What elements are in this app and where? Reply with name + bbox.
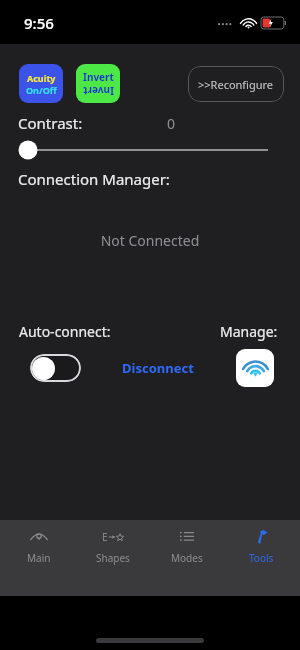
button[interactable]: Disconnect: [116, 355, 200, 381]
button[interactable]: Manage Wi-Fi: [236, 349, 274, 387]
button[interactable]: Acuity: [19, 64, 63, 103]
button[interactable]: Modes: [152, 520, 222, 565]
button[interactable]: [18, 139, 268, 161]
button[interactable]: >>Reconfigure: [188, 66, 284, 102]
staticText: Auto-connect:: [19, 322, 111, 341]
staticText: Not Connected: [0, 231, 300, 250]
staticText: Invert: [83, 84, 114, 98]
staticText: Manage:: [220, 322, 278, 341]
staticText: 0: [167, 114, 176, 133]
staticText: Modes: [171, 551, 203, 565]
staticText: Tools: [249, 551, 274, 565]
staticText: >>Reconfigure: [198, 77, 274, 92]
button[interactable]: Tools: [226, 520, 296, 565]
button[interactable]: Auto-connect toggle: [30, 354, 81, 382]
staticText: Disconnect: [122, 359, 194, 377]
staticText: Shapes: [96, 551, 130, 565]
button[interactable]: E: [78, 520, 148, 565]
staticText: Acuity: [27, 72, 56, 84]
button[interactable]: Invert: [76, 64, 120, 103]
staticText: Connection Manager:: [18, 169, 170, 189]
staticText: 9:56: [24, 13, 54, 33]
staticText: Contrast:: [18, 113, 83, 133]
staticText: E: [102, 530, 108, 544]
button[interactable]: Main: [4, 520, 74, 565]
staticText: Main: [27, 551, 51, 565]
staticText: Invert: [83, 70, 114, 84]
staticText: On/Off: [26, 84, 57, 96]
